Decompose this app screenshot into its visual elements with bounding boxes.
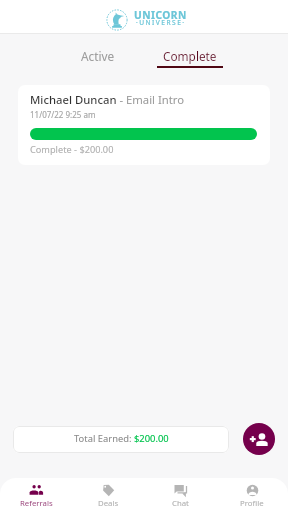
staticText: UNICORN xyxy=(134,8,187,22)
staticText: Chat xyxy=(172,498,189,509)
button[interactable]: Complete xyxy=(152,46,228,68)
button[interactable]: Michael Duncan - Email Intro xyxy=(18,85,270,165)
staticText: Michael Duncan - Email Intro xyxy=(30,92,185,107)
button[interactable]: Active xyxy=(60,46,136,66)
staticText: Total Earned: $200.00 xyxy=(74,432,169,445)
staticText: Profile xyxy=(240,498,264,509)
button[interactable]: Profile xyxy=(216,478,288,512)
button[interactable]: Referrals xyxy=(0,478,72,512)
button[interactable]: Add referral xyxy=(243,423,275,455)
staticText: Active xyxy=(81,48,115,64)
button[interactable]: Deals xyxy=(72,478,144,512)
staticText: Complete xyxy=(163,48,217,64)
button[interactable]: Total Earned: $200.00 xyxy=(13,426,229,453)
staticText: Complete - $200.00 xyxy=(30,143,114,156)
staticText: 11/07/22 9:25 am xyxy=(30,109,96,120)
button[interactable]: Chat xyxy=(144,478,216,512)
staticText: Deals xyxy=(98,498,119,509)
staticText: Referrals xyxy=(20,498,53,509)
staticText: ·UNIVERSE· xyxy=(136,18,186,27)
